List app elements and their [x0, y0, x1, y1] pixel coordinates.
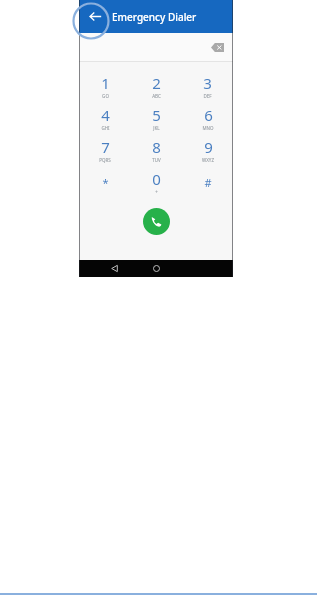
staticText: 3 — [203, 73, 212, 93]
staticText: 8 — [152, 137, 161, 157]
staticText: PQRS — [99, 157, 111, 163]
staticText: # — [204, 175, 212, 190]
staticText: WXYZ — [202, 157, 214, 163]
staticText: Emergency Dialer — [112, 10, 197, 24]
button[interactable]: # — [182, 166, 233, 198]
staticText: + — [155, 189, 158, 195]
button[interactable]: 2 — [131, 70, 182, 102]
staticText: 1 — [101, 73, 110, 93]
button[interactable]: 4 — [79, 102, 131, 134]
staticText: DEF — [203, 93, 212, 99]
staticText: 9 — [204, 137, 213, 157]
button[interactable]: 3 — [182, 70, 233, 102]
staticText: 6 — [204, 105, 213, 125]
button[interactable]: Back — [79, 0, 112, 33]
staticText: 5 — [152, 105, 161, 125]
staticText: GHI — [101, 125, 110, 131]
staticText: MNO — [202, 125, 214, 131]
button[interactable]: Backspace — [208, 38, 226, 56]
button[interactable]: 7 — [79, 134, 131, 166]
button[interactable]: 1 — [79, 70, 131, 102]
button[interactable]: Call — [143, 208, 170, 235]
staticText: 0 — [152, 169, 161, 189]
button[interactable]: 8 — [131, 134, 182, 166]
staticText: JKL — [153, 125, 160, 131]
button[interactable]: 0 — [131, 166, 182, 198]
staticText: 7 — [101, 137, 110, 157]
button[interactable]: 9 — [182, 134, 233, 166]
staticText: ABC — [152, 93, 161, 99]
staticText: * — [102, 175, 109, 190]
staticText: 4 — [101, 105, 110, 125]
staticText: GO — [102, 93, 109, 99]
staticText: 2 — [152, 73, 161, 93]
button[interactable]: 5 — [131, 102, 182, 134]
button[interactable]: Home — [148, 260, 165, 277]
button[interactable]: * — [79, 166, 131, 198]
button[interactable]: Back — [106, 260, 123, 277]
staticText: TUV — [152, 157, 161, 163]
button[interactable]: 6 — [182, 102, 233, 134]
